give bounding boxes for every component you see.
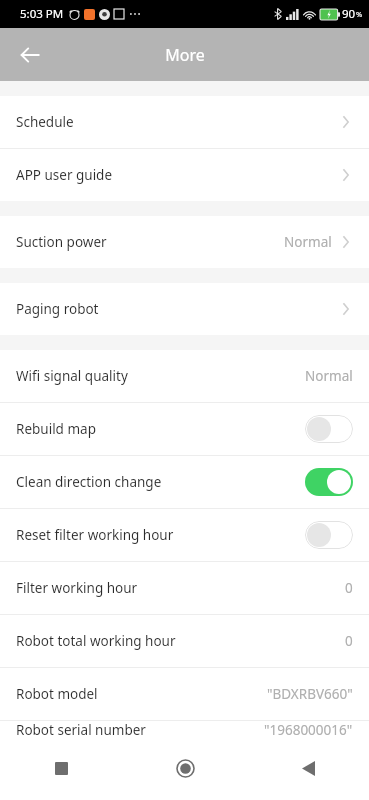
staticText: Robot serial number xyxy=(16,721,264,735)
staticText: Robot total working hour xyxy=(16,632,345,650)
staticText: Robot model xyxy=(16,685,267,703)
staticText: APP user guide xyxy=(16,166,339,184)
staticText: % xyxy=(356,9,363,19)
staticText: Normal xyxy=(284,233,332,251)
button[interactable]: Paging robot xyxy=(0,283,369,335)
staticText: "BDXRBV660" xyxy=(267,685,353,703)
button[interactable]: APP user guide xyxy=(0,149,369,201)
button[interactable]: Back xyxy=(285,745,331,791)
staticText: Suction power xyxy=(16,233,284,251)
staticText: "1968000016" xyxy=(264,721,353,735)
button[interactable]: Recent apps xyxy=(38,745,84,791)
staticText: 0 xyxy=(345,632,353,650)
button[interactable]: Toggle on xyxy=(305,468,353,496)
button[interactable]: Schedule xyxy=(0,96,369,148)
button[interactable]: Toggle off xyxy=(305,521,353,549)
button[interactable]: Rebuild map xyxy=(0,403,369,455)
staticText: Filter working hour xyxy=(16,579,345,597)
staticText: 0 xyxy=(345,579,353,597)
staticText: Clean direction change xyxy=(16,473,305,491)
staticText: Wifi signal quality xyxy=(16,367,305,385)
staticText: Schedule xyxy=(16,113,339,131)
button[interactable]: Suction power xyxy=(0,216,369,268)
button[interactable]: Home xyxy=(162,745,208,791)
button[interactable]: Reset filter working hour xyxy=(0,509,369,561)
staticText: Reset filter working hour xyxy=(16,526,305,544)
button[interactable]: Robot serial number xyxy=(0,721,369,735)
staticText: More xyxy=(165,44,205,66)
staticText: Rebuild map xyxy=(16,420,305,438)
button[interactable]: Toggle off xyxy=(305,415,353,443)
staticText: Normal xyxy=(305,367,353,385)
staticText: 5:03 PM xyxy=(20,6,64,22)
button[interactable]: Wifi signal quality xyxy=(0,350,369,402)
staticText: Paging robot xyxy=(16,300,339,318)
button[interactable]: Robot total working hour xyxy=(0,615,369,667)
button[interactable]: Clean direction change xyxy=(0,456,369,508)
button[interactable]: Filter working hour xyxy=(0,562,369,614)
staticText: 90 xyxy=(342,6,356,22)
button[interactable]: Robot model xyxy=(0,668,369,720)
button[interactable]: Back xyxy=(8,33,52,77)
